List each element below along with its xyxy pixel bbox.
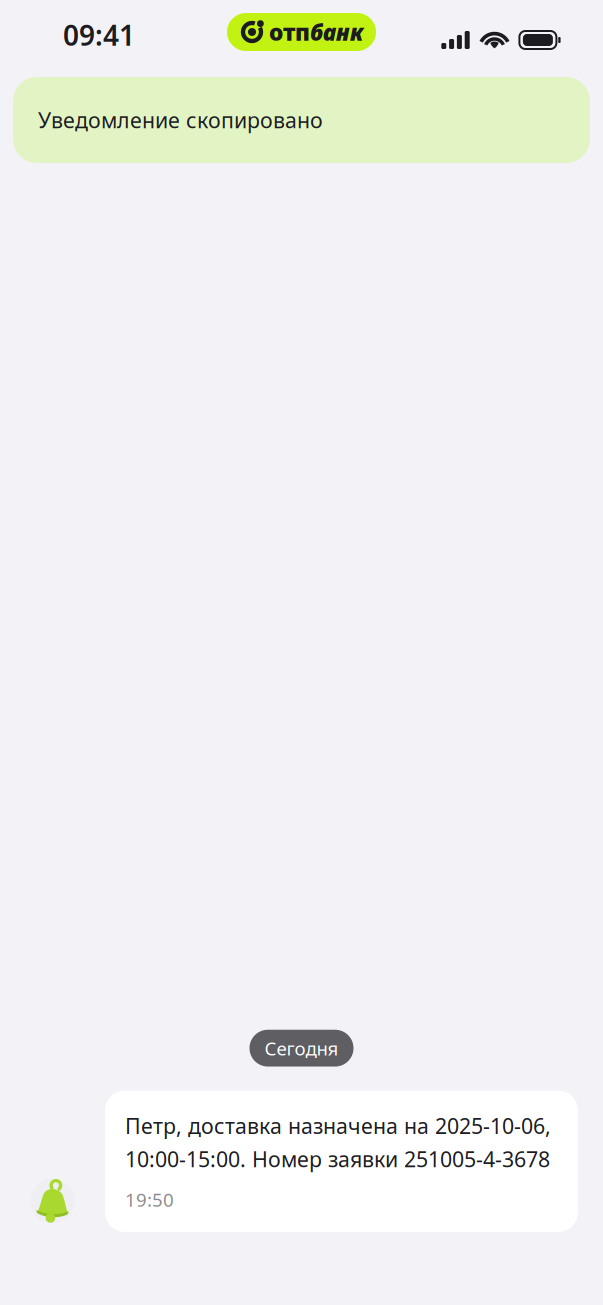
button[interactable]: Уведомление скопировано	[13, 77, 590, 163]
staticText: 09:41	[63, 16, 135, 54]
staticText: Уведомление скопировано	[38, 106, 323, 134]
staticText: банк	[310, 17, 363, 47]
staticText: отп	[269, 17, 310, 47]
staticText: Сегодня	[264, 1036, 338, 1061]
staticText: 19:50	[125, 1187, 174, 1212]
button[interactable]: Петр, доставка назначена на 2025-10-06, …	[105, 1090, 578, 1232]
staticText: Петр, доставка назначена на 2025-10-06, …	[125, 1111, 551, 1173]
button[interactable]: Уведомления	[0, 1179, 105, 1232]
